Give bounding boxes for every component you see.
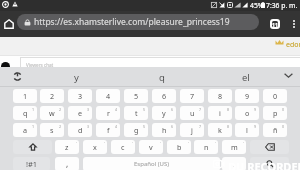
- staticText: 7: [199, 124, 202, 129]
- button[interactable]: e: [68, 106, 92, 120]
- button[interactable]: Change input method: [13, 72, 22, 81]
- staticText: d: [78, 125, 83, 135]
- staticText: q: [23, 108, 28, 118]
- button[interactable]: r: [96, 106, 120, 120]
- staticText: 5: [143, 107, 146, 112]
- staticText: 6: [171, 124, 174, 129]
- button[interactable]: Expand suggestions: [284, 73, 293, 78]
- button[interactable]: 3: [68, 89, 92, 103]
- staticText: 5: [134, 91, 139, 101]
- staticText: 9: [254, 107, 257, 112]
- staticText: 5: [143, 124, 146, 129]
- staticText: 7:36 p. m.: [266, 1, 298, 10]
- staticText: ,: [66, 158, 69, 170]
- button[interactable]: s: [40, 123, 64, 137]
- button[interactable]: d: [68, 123, 92, 137]
- button[interactable]: h: [152, 123, 176, 137]
- button[interactable]: q: [137, 68, 187, 86]
- button[interactable]: 5: [124, 89, 148, 103]
- staticText: 9: [254, 124, 257, 129]
- button[interactable]: c: [111, 140, 135, 154]
- staticText: 3: [87, 107, 90, 112]
- button[interactable]: Shift: [13, 140, 52, 154]
- staticText: 2: [59, 107, 62, 112]
- button[interactable]: ,: [55, 157, 79, 170]
- button[interactable]: 8: [208, 89, 232, 103]
- staticText: 2: [50, 91, 55, 101]
- staticText: a: [23, 125, 28, 135]
- staticText: u: [190, 108, 195, 118]
- button[interactable]: 4: [96, 89, 120, 103]
- button[interactable]: u: [180, 106, 204, 120]
- button[interactable]: a: [13, 123, 37, 137]
- button[interactable]: z: [55, 140, 79, 154]
- staticText: 8: [218, 91, 223, 101]
- staticText: ': [160, 141, 161, 146]
- button[interactable]: v: [139, 140, 163, 154]
- button[interactable]: Viewers chat: [20, 57, 300, 68]
- button[interactable]: ñ: [263, 123, 287, 137]
- button[interactable]: n: [194, 140, 218, 154]
- staticText: 7: [199, 107, 202, 112]
- staticText: 1: [32, 107, 35, 112]
- staticText: j: [191, 125, 193, 135]
- button[interactable]: k: [208, 123, 232, 137]
- staticText: 45%: [250, 1, 264, 10]
- button[interactable]: Search: [250, 157, 289, 170]
- staticText: g: [134, 125, 139, 135]
- button[interactable]: Español (US): [83, 157, 220, 170]
- staticText: y: [74, 71, 79, 84]
- staticText: https://es.xhamsterlive.com/pleasure_pri…: [34, 16, 230, 28]
- button[interactable]: .: [222, 157, 246, 170]
- staticText: ': [215, 141, 216, 146]
- staticText: ': [188, 141, 189, 146]
- staticText: k: [218, 125, 222, 135]
- staticText: x: [93, 142, 97, 152]
- staticText: 0: [282, 107, 285, 112]
- button[interactable]: o: [235, 106, 259, 120]
- staticText: ñ: [273, 125, 278, 135]
- button[interactable]: 1: [13, 89, 37, 103]
- button[interactable]: Backspace: [250, 140, 289, 154]
- staticText: 1: [32, 124, 35, 129]
- button[interactable]: 7: [180, 89, 204, 103]
- button[interactable]: 0: [263, 89, 287, 103]
- button[interactable]: 9: [235, 89, 259, 103]
- staticText: Español (US): [134, 160, 169, 168]
- button[interactable]: Home: [1, 11, 16, 37]
- staticText: f: [107, 125, 110, 135]
- staticText: edon: [286, 40, 300, 50]
- button[interactable]: x: [83, 140, 107, 154]
- button[interactable]: 6: [152, 89, 176, 103]
- staticText: ': [243, 141, 244, 146]
- button[interactable]: l: [235, 123, 259, 137]
- button[interactable]: 2: [40, 89, 64, 103]
- button[interactable]: Tabs: [265, 11, 285, 37]
- button[interactable]: y: [51, 68, 101, 86]
- button[interactable]: t: [124, 106, 148, 120]
- button[interactable]: el: [221, 68, 271, 86]
- staticText: w: [49, 108, 55, 118]
- staticText: m: [231, 142, 238, 152]
- button[interactable]: q: [13, 106, 37, 120]
- button[interactable]: g: [124, 123, 148, 137]
- staticText: y: [162, 108, 166, 118]
- button[interactable]: !#1: [13, 157, 50, 170]
- staticText: s: [50, 125, 54, 135]
- staticText: q: [159, 71, 165, 84]
- button[interactable]: w: [40, 106, 64, 120]
- button[interactable]: f: [96, 123, 120, 137]
- button[interactable]: i: [208, 106, 232, 120]
- button[interactable]: y: [152, 106, 176, 120]
- button[interactable]: m: [222, 140, 246, 154]
- button[interactable]: p: [263, 106, 287, 120]
- button[interactable]: More options: [287, 11, 300, 37]
- staticText: 11: [272, 21, 278, 27]
- staticText: 8: [227, 124, 230, 129]
- staticText: 4: [106, 91, 111, 101]
- button[interactable]: j: [180, 123, 204, 137]
- button[interactable]: b: [167, 140, 191, 154]
- staticText: 0: [273, 91, 278, 101]
- button[interactable]: https://es.xhamsterlive.com/pleasure_pri…: [17, 14, 259, 30]
